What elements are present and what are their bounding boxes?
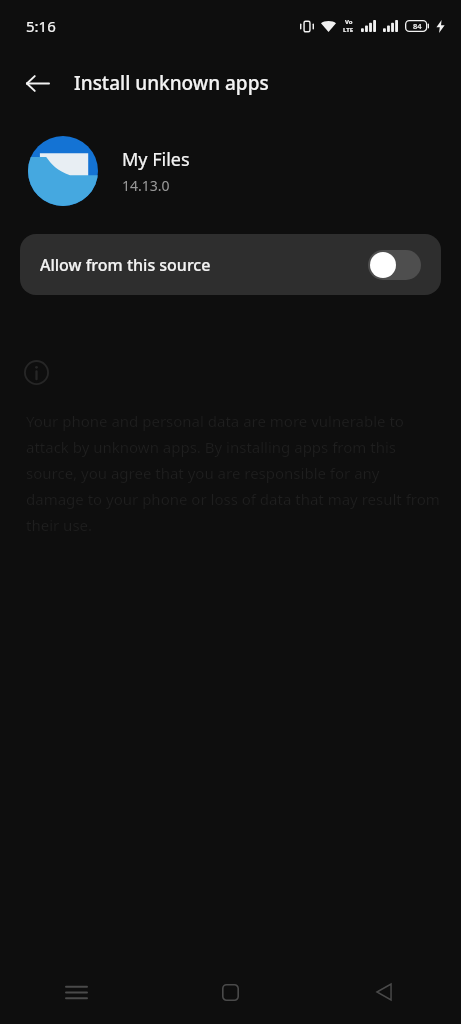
button[interactable]: Home <box>153 960 307 1024</box>
staticText: 14.13.0 <box>122 176 170 195</box>
staticText: LTE <box>343 26 354 34</box>
staticText: 5:16 <box>26 16 56 36</box>
button[interactable]: Back <box>307 960 461 1024</box>
staticText: My Files <box>122 147 190 172</box>
staticText: Vo <box>345 18 353 26</box>
button[interactable]: Allow from this source <box>20 234 441 295</box>
staticText: Install unknown apps <box>74 70 269 96</box>
staticText: Your phone and personal data are more vu… <box>26 411 441 536</box>
staticText: 84 <box>413 21 422 31</box>
staticText: Allow from this source <box>40 254 368 276</box>
button[interactable]: Recent apps <box>0 960 153 1024</box>
button[interactable]: Back <box>14 60 60 106</box>
